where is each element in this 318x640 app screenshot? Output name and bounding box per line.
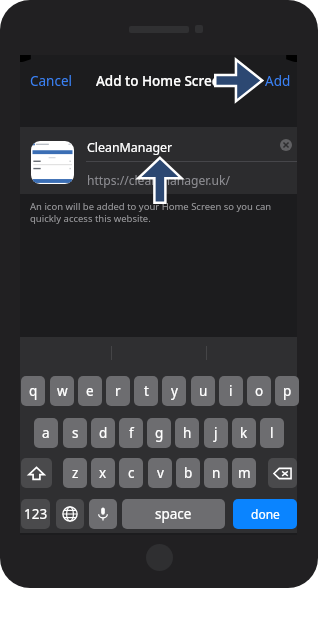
button[interactable]: h (175, 418, 199, 448)
button[interactable]: Shift (21, 458, 52, 488)
button[interactable]: Backspace (268, 458, 297, 488)
staticText: i (229, 382, 233, 400)
staticText: n (212, 464, 221, 482)
other: Backspace (273, 464, 292, 483)
button[interactable]: r (106, 376, 130, 406)
button[interactable]: u (191, 376, 215, 406)
button[interactable]: 123 (21, 499, 50, 529)
button[interactable]: f (119, 418, 143, 448)
button[interactable]: m (232, 458, 256, 488)
staticText: Add (265, 72, 291, 90)
button[interactable]: x (91, 458, 115, 488)
button[interactable]: done (233, 499, 297, 529)
button[interactable]: q (21, 376, 45, 406)
staticText: q (29, 382, 38, 400)
staticText: An icon will be added to your Home Scree… (30, 200, 288, 225)
staticText: Add to Home Screen (96, 72, 228, 90)
button[interactable]: Cancel (30, 72, 73, 90)
button[interactable]: Clear text (276, 135, 296, 155)
button[interactable]: e (78, 376, 102, 406)
staticText: u (199, 382, 208, 400)
staticText: f (129, 424, 134, 442)
button[interactable]: b (176, 458, 200, 488)
button[interactable]: w (50, 376, 74, 406)
staticText: r (115, 382, 121, 400)
button[interactable]: y (162, 376, 186, 406)
staticText: m (238, 464, 251, 482)
staticText: x (99, 464, 107, 482)
button[interactable]: a (34, 418, 58, 448)
staticText: v (157, 464, 164, 482)
staticText: CleanManager (87, 139, 173, 156)
staticText: g (155, 424, 164, 442)
button[interactable]: space (122, 499, 225, 529)
button[interactable]: i (219, 376, 243, 406)
staticText: k (240, 424, 248, 442)
button[interactable]: g (147, 418, 171, 448)
button[interactable]: Change keyboard (56, 499, 84, 529)
staticText: j (214, 424, 218, 442)
staticText: d (99, 424, 108, 442)
staticText: y (171, 382, 178, 400)
button[interactable]: l (260, 418, 284, 448)
staticText: l (270, 424, 274, 442)
button[interactable]: o (247, 376, 271, 406)
button[interactable]: t (134, 376, 158, 406)
staticText: a (42, 424, 50, 442)
button[interactable]: v (148, 458, 172, 488)
button[interactable]: z (63, 458, 87, 488)
staticText: h (183, 424, 192, 442)
staticText: b (184, 464, 193, 482)
staticText: e (86, 382, 94, 400)
staticText: o (255, 382, 264, 400)
button[interactable]: s (63, 418, 87, 448)
staticText: 123 (24, 505, 48, 523)
staticText: t (144, 382, 149, 400)
button[interactable]: p (275, 376, 299, 406)
button[interactable]: Dictation (89, 499, 117, 529)
button[interactable]: k (232, 418, 256, 448)
staticText: done (251, 506, 280, 522)
staticText: space (155, 505, 192, 523)
other: Change keyboard (62, 506, 78, 522)
button[interactable]: j (204, 418, 228, 448)
staticText: https://cleanmanager.uk/ (87, 172, 231, 188)
staticText: s (72, 424, 79, 442)
other: Dictation (95, 506, 111, 522)
button[interactable]: n (204, 458, 228, 488)
staticText: c (128, 464, 135, 482)
staticText: w (57, 382, 68, 400)
button[interactable]: Add (265, 72, 291, 90)
staticText: p (283, 382, 292, 400)
staticText: Cancel (30, 72, 73, 90)
button[interactable]: c (119, 458, 143, 488)
button[interactable]: CleanManager (20, 127, 297, 194)
staticText: z (72, 464, 79, 482)
other: Shift (28, 465, 45, 482)
button[interactable]: d (91, 418, 115, 448)
